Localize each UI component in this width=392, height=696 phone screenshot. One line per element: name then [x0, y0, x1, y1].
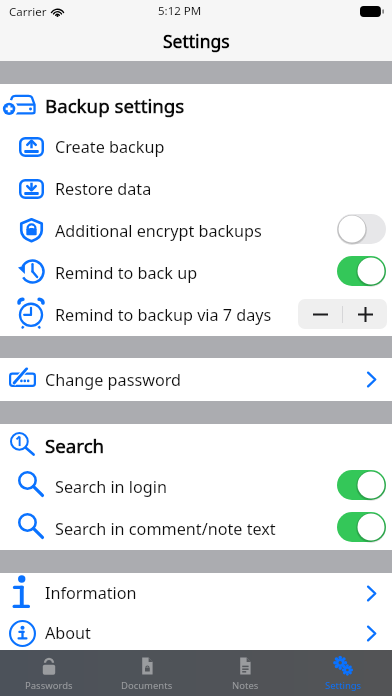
staticText: Backup settings — [45, 93, 185, 118]
button[interactable]: Backup settings — [0, 84, 392, 126]
staticText: Notes — [232, 679, 259, 692]
button[interactable]: Remind to backup via 7 days — [0, 294, 392, 336]
button[interactable]: Documents — [98, 650, 196, 696]
staticText: Settings — [325, 679, 362, 692]
staticText: Search in login — [55, 476, 167, 498]
button[interactable]: Passwords — [0, 650, 98, 696]
staticText: Change password — [45, 369, 181, 391]
staticText: About — [45, 622, 91, 644]
staticText: Documents — [121, 679, 173, 692]
button[interactable]: Decrease — [298, 299, 342, 329]
button[interactable]: Additional encrypt backups — [0, 210, 392, 252]
button[interactable]: Settings — [294, 650, 392, 696]
button[interactable]: Search in comment/note text on — [337, 512, 386, 542]
staticText: Search in comment/note text — [55, 518, 276, 540]
button[interactable]: Increase — [343, 299, 387, 329]
button[interactable]: Search in login on — [337, 470, 386, 500]
staticText: Search — [45, 433, 105, 458]
staticText: Remind to back up — [55, 262, 198, 284]
button[interactable]: Change password — [0, 358, 392, 401]
staticText: Create backup — [55, 136, 165, 158]
staticText: 5:12 PM — [158, 3, 202, 19]
button[interactable]: About — [0, 613, 392, 653]
button[interactable]: Remind to back up — [0, 252, 392, 294]
button[interactable]: Additional encrypt backups off — [337, 214, 386, 244]
button[interactable]: Remind to back up on — [337, 256, 386, 286]
staticText: Passwords — [25, 679, 73, 692]
staticText: Information — [45, 582, 137, 604]
button[interactable]: Search in comment/note text — [0, 508, 392, 550]
staticText: Remind to backup via 7 days — [55, 304, 272, 326]
button[interactable]: Notes — [196, 650, 294, 696]
button[interactable]: Search — [0, 424, 392, 466]
button[interactable]: Search in login — [0, 466, 392, 508]
staticText: Additional encrypt backups — [55, 220, 262, 242]
button[interactable]: Restore data — [0, 168, 392, 210]
button[interactable]: Information — [0, 573, 392, 613]
staticText: Settings — [163, 29, 230, 53]
staticText: Restore data — [55, 178, 152, 200]
button[interactable]: Create backup — [0, 126, 392, 168]
staticText: Carrier — [9, 4, 47, 20]
